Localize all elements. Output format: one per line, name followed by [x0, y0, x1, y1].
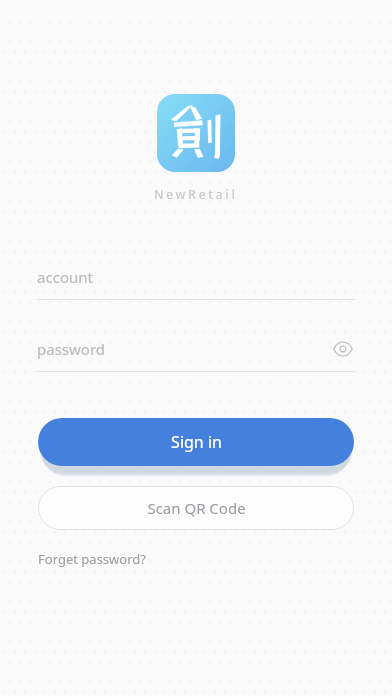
- staticText: account: [37, 267, 93, 287]
- button[interactable]: Show password: [331, 337, 355, 361]
- staticText: Forget password?: [38, 550, 146, 568]
- button[interactable]: account: [37, 264, 355, 300]
- button[interactable]: Sign in: [38, 418, 354, 466]
- staticText: NewRetail: [154, 186, 238, 202]
- button[interactable]: Scan QR Code: [38, 486, 354, 530]
- staticText: password: [37, 339, 105, 359]
- staticText: Scan QR Code: [147, 498, 246, 518]
- button[interactable]: Forget password?: [38, 548, 146, 570]
- button[interactable]: password: [37, 336, 355, 372]
- staticText: Sign in: [171, 431, 222, 453]
